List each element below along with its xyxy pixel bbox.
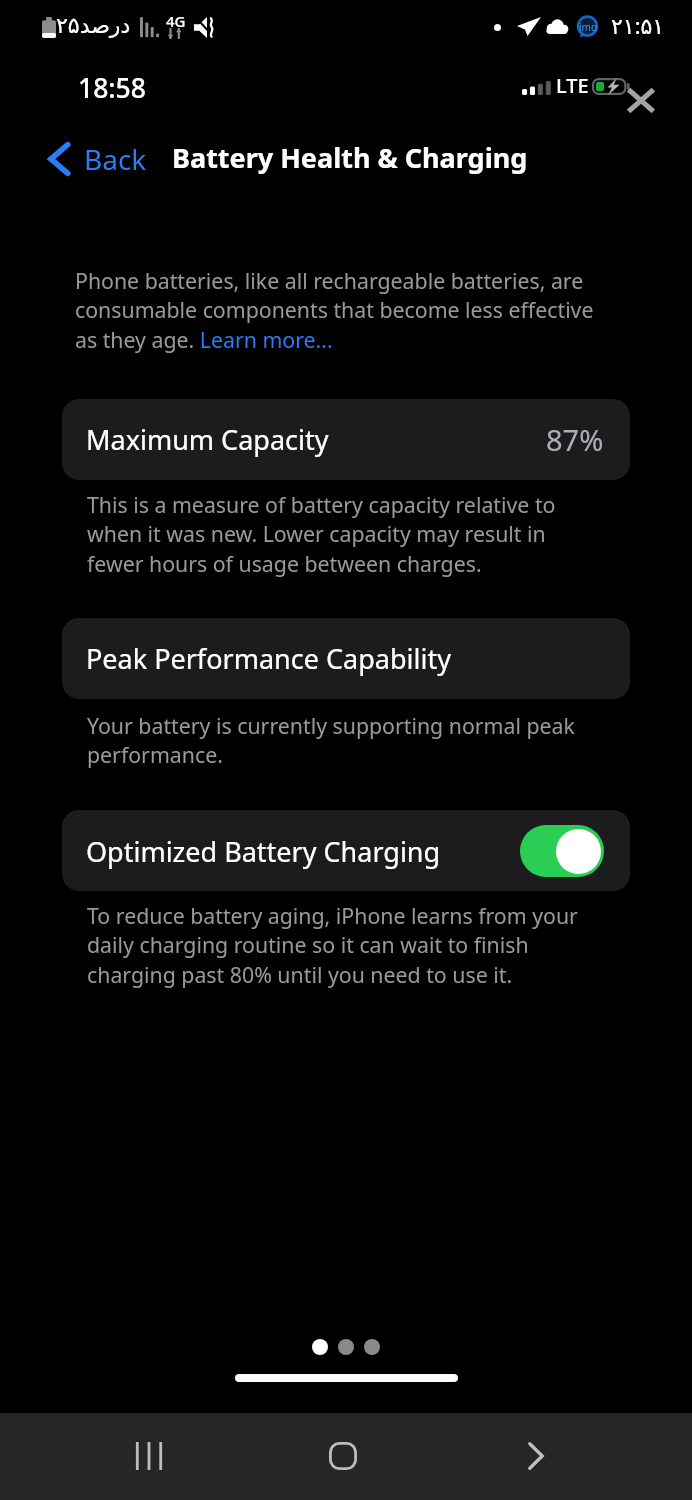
staticText: Peak Performance Capability (86, 640, 451, 677)
button[interactable]: Optimized Battery Charging (62, 810, 630, 891)
staticText: LTE (556, 72, 589, 99)
staticText: To reduce battery aging, iPhone learns f… (87, 901, 597, 990)
button[interactable]: Learn more (126, 329, 260, 353)
button[interactable]: Recents (107, 1414, 191, 1498)
button[interactable]: Back (47, 140, 147, 178)
button[interactable]: Optimized Battery Charging toggle (520, 825, 604, 877)
staticText: Back (84, 140, 147, 178)
staticText: ۲۵درصد (56, 13, 131, 39)
staticText: This is a measure of battery capacity re… (87, 490, 597, 579)
staticText: Battery Health & Charging (172, 139, 528, 176)
staticText: 87% (546, 420, 604, 459)
staticText: Maximum Capacity (86, 421, 329, 458)
staticText: ۲۱:۵۱ (611, 10, 665, 40)
staticText: Phone batteries, like all rechargeable b… (75, 266, 620, 355)
staticText: imo (579, 20, 597, 34)
button[interactable]: Home (301, 1414, 385, 1498)
button[interactable]: Back (494, 1414, 578, 1498)
button[interactable]: Peak Performance Capability (62, 618, 630, 699)
staticText: 18:58 (78, 70, 146, 106)
staticText: Optimized Battery Charging (86, 833, 441, 870)
button[interactable]: Close (626, 87, 656, 114)
button[interactable]: Maximum Capacity (62, 399, 630, 480)
staticText: Your battery is currently supporting nor… (87, 711, 597, 770)
staticText: 4G (166, 11, 186, 31)
